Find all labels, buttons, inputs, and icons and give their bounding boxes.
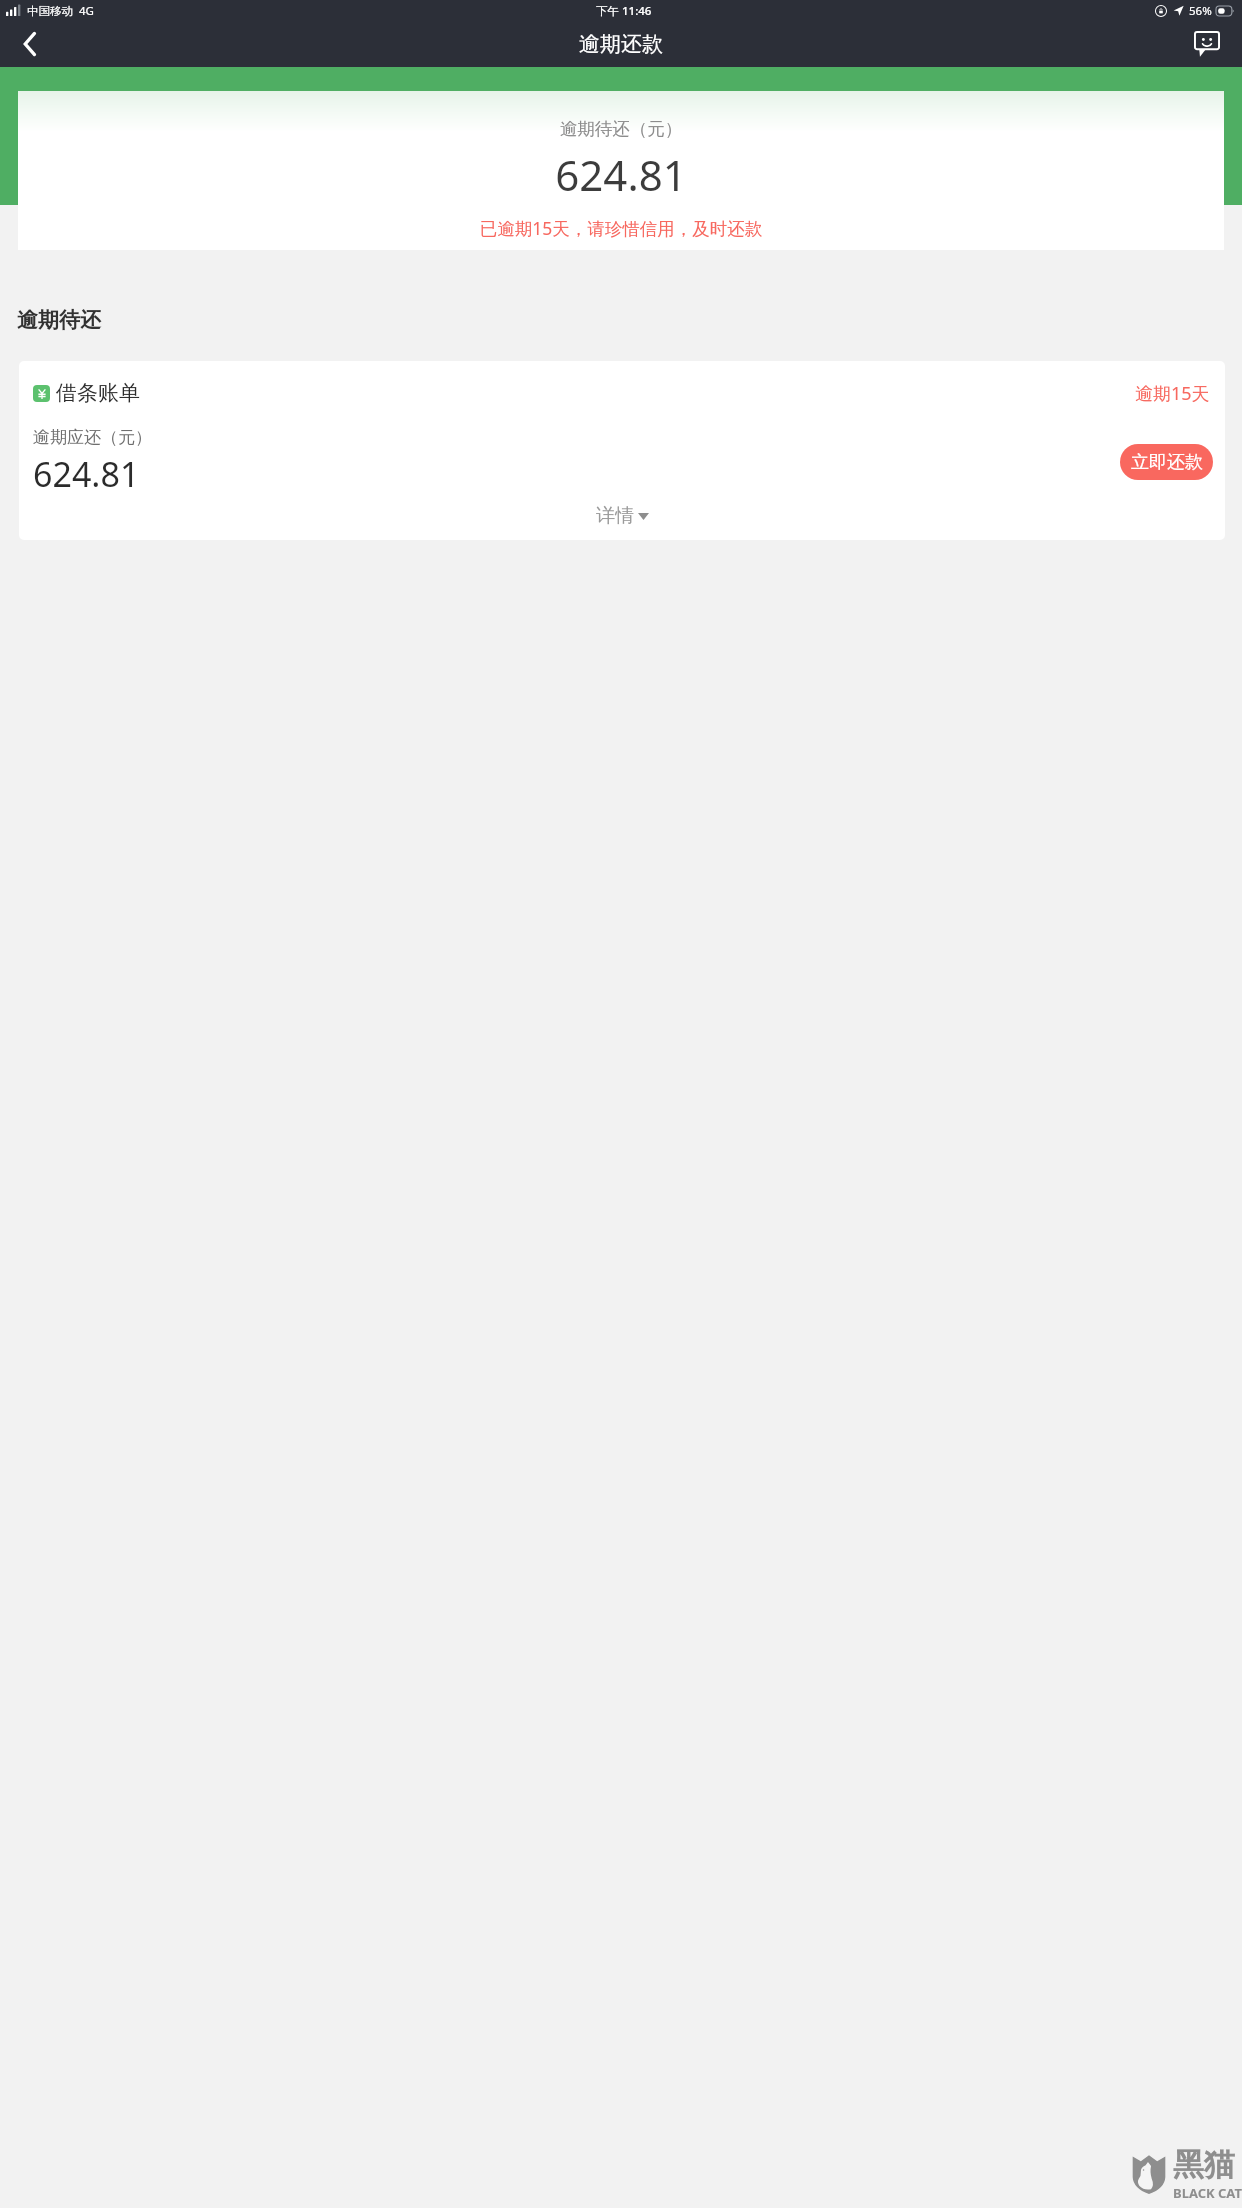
staticText: 详情 xyxy=(596,504,634,528)
staticText: 逾期还款 xyxy=(579,31,663,57)
staticText: 逾期应还（元） xyxy=(33,427,152,448)
staticText: 逾期待还 xyxy=(17,307,101,333)
staticText: 逾期待还（元） xyxy=(18,118,1224,140)
staticText: 624.81 xyxy=(18,146,1224,203)
button[interactable]: 立即还款 xyxy=(1120,444,1213,480)
staticText: 下午 11:46 xyxy=(596,3,652,19)
button[interactable]: Customer service chat xyxy=(1186,23,1228,65)
button[interactable]: Back xyxy=(8,22,52,66)
staticText: 56% xyxy=(1189,3,1212,19)
staticText: 已逾期15天，请珍惜信用，及时还款 xyxy=(18,216,1224,240)
staticText: 黑猫 xyxy=(1173,2145,1235,2184)
staticText: 624.81 xyxy=(33,451,140,497)
staticText: 逾期15天 xyxy=(1135,381,1210,406)
staticText: BLACK CAT xyxy=(1173,2184,1242,2202)
button[interactable]: 详情 xyxy=(19,497,1225,535)
button[interactable]: 借条账单 xyxy=(19,361,1225,540)
staticText: 借条账单 xyxy=(56,380,140,406)
staticText: 中国移动 xyxy=(27,4,73,18)
staticText: 4G xyxy=(79,3,94,19)
staticText: 立即还款 xyxy=(1131,451,1203,474)
